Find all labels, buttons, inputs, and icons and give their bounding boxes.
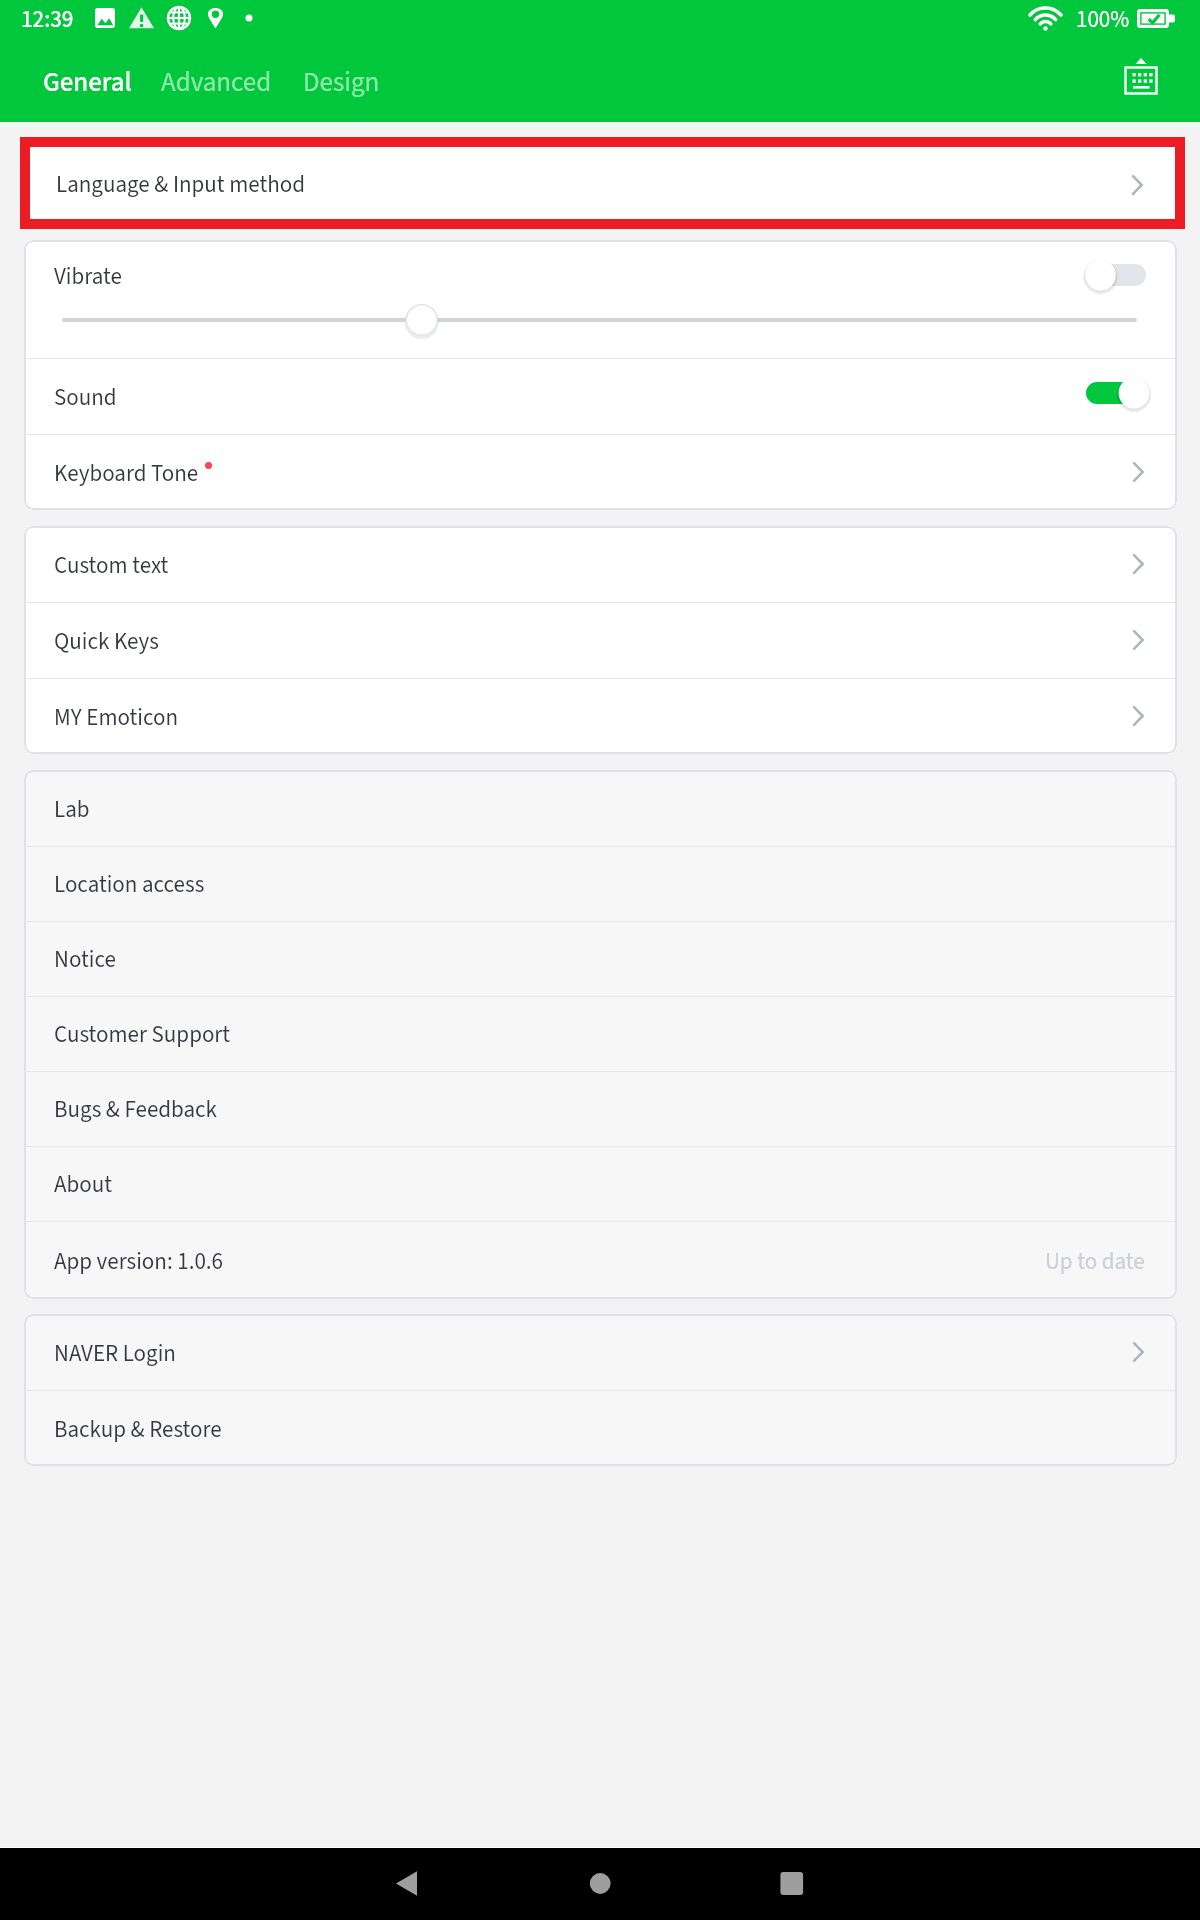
button[interactable]: Bugs & Feedback — [24, 1071, 1177, 1146]
staticText: Customer Support — [54, 1018, 231, 1051]
button[interactable]: Custom text — [24, 526, 1177, 602]
staticText: Design — [303, 63, 380, 101]
staticText: About — [54, 1168, 112, 1201]
button[interactable]: Language & Input method — [30, 147, 1175, 219]
button[interactable]: Lab — [24, 770, 1177, 846]
button[interactable]: Keyboard Tone — [24, 434, 1177, 510]
button[interactable]: NAVER Login — [24, 1314, 1177, 1390]
button[interactable]: Advanced — [161, 63, 272, 101]
button[interactable]: General — [43, 63, 132, 101]
staticText: 12:39 — [21, 3, 74, 36]
staticText: 100% — [1076, 3, 1130, 36]
button[interactable]: Backup & Restore — [24, 1390, 1177, 1466]
staticText: General — [43, 63, 132, 101]
staticText: Keyboard Tone — [54, 457, 199, 490]
button[interactable]: Notice — [24, 921, 1177, 996]
staticText: Language & Input method — [56, 168, 305, 201]
button[interactable]: About — [24, 1146, 1177, 1221]
staticText: App version: 1.0.6 — [54, 1245, 223, 1278]
button[interactable]: Vibrate — [24, 240, 1177, 310]
staticText: Backup & Restore — [54, 1413, 222, 1446]
button[interactable]: Turn on — [1081, 257, 1151, 293]
button[interactable]: Design — [303, 63, 380, 101]
button[interactable]: App version: 1.0.6 — [24, 1221, 1177, 1299]
button[interactable]: Show keyboard — [1113, 54, 1169, 110]
button[interactable]: Turn off — [1081, 375, 1151, 411]
staticText: Up to date — [1045, 1245, 1145, 1278]
button[interactable]: MY Emoticon — [24, 678, 1177, 754]
staticText: Quick Keys — [54, 625, 159, 658]
button[interactable]: Sound — [24, 358, 1177, 434]
staticText: NAVER Login — [54, 1337, 176, 1370]
button[interactable]: Quick Keys — [24, 602, 1177, 678]
staticText: Bugs & Feedback — [54, 1093, 217, 1126]
staticText: MY Emoticon — [54, 701, 179, 734]
button[interactable]: Customer Support — [24, 996, 1177, 1071]
staticText: Custom text — [54, 549, 169, 582]
staticText: Lab — [54, 793, 90, 826]
staticText: Notice — [54, 943, 116, 976]
staticText: Vibrate — [54, 260, 122, 293]
staticText: Advanced — [161, 63, 272, 101]
button[interactable]: Location access — [24, 846, 1177, 921]
staticText: Sound — [54, 381, 117, 414]
staticText: Location access — [54, 868, 205, 901]
